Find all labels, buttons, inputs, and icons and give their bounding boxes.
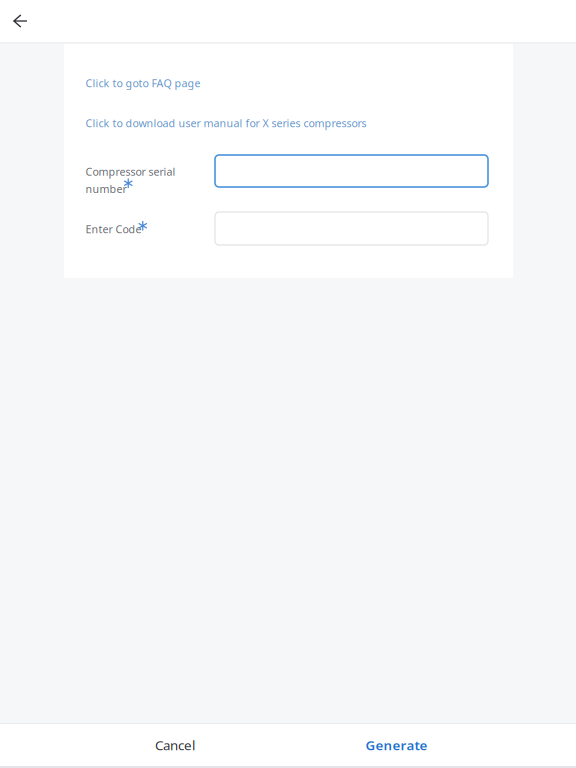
staticText: number — [85, 182, 126, 196]
button[interactable]: Generate — [286, 724, 507, 766]
staticText: Enter Code — [85, 222, 141, 236]
button[interactable]: Click to goto FAQ page — [85, 76, 265, 90]
button[interactable]: Cancel — [64, 724, 286, 766]
button[interactable]: Back — [0, 0, 42, 42]
staticText: Generate — [365, 736, 427, 754]
staticText: Click to goto FAQ page — [85, 76, 200, 90]
staticText: Compressor serial — [85, 164, 175, 179]
staticText: Cancel — [155, 736, 195, 754]
staticText: Click to download user manual for X seri… — [85, 116, 366, 130]
button[interactable]: Click to download user manual for X seri… — [85, 116, 385, 130]
